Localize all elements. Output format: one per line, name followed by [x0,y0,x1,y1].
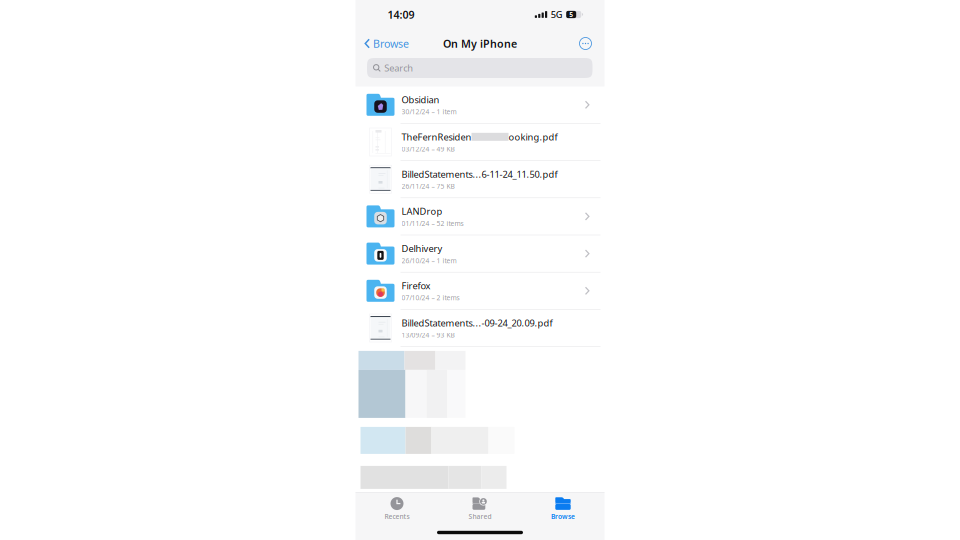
staticText: 01/11/24 – 52 items [401,219,463,228]
staticText: Delhivery [401,242,442,255]
staticText: Browse [373,36,409,51]
button[interactable]: More options [574,29,604,58]
staticText: 30/12/24 – 1 item [401,107,456,116]
staticText: Search [384,62,413,74]
staticText: 5 [569,10,573,19]
staticText: Shared [468,512,491,521]
button[interactable]: Browse [355,29,415,58]
staticText: Obsidian [401,93,439,106]
staticText: 26/10/24 – 1 item [401,256,456,265]
staticText: Firefox [401,279,430,292]
staticText: 03/12/24 – 49 KB [401,144,454,153]
staticText: 26/11/24 – 75 KB [401,182,454,191]
button[interactable]: Delhivery [355,235,604,272]
button[interactable]: LANDrop [355,198,604,235]
button[interactable]: Firefox [355,272,604,310]
button[interactable]: Obsidian [355,86,604,124]
button[interactable]: Recents [355,493,438,525]
staticText: BilledStatements...6-11-24_11.50.pdf [401,168,557,180]
staticText: TheFernResiden [401,131,471,143]
button[interactable]: Search [355,58,604,86]
button[interactable]: TheFernResiden [355,124,604,161]
staticText: 14:09 [387,7,414,22]
button[interactable]: BilledStatements...-09-24_20.09.pdf [355,310,604,347]
button[interactable]: Browse [521,493,604,525]
staticText: On My iPhone [443,36,517,51]
staticText: LANDrop [401,205,442,217]
staticText: 5G [551,8,563,21]
staticText: Browse [551,512,575,521]
staticText: 13/09/24 – 93 KB [401,330,454,339]
staticText: BilledStatements...-09-24_20.09.pdf [401,317,552,329]
button[interactable]: Shared [438,493,521,525]
button[interactable]: BilledStatements...6-11-24_11.50.pdf [355,161,604,198]
staticText: Recents [384,512,409,521]
staticText: 07/10/24 – 2 items [401,293,459,302]
staticText: ooking.pdf [508,131,557,143]
